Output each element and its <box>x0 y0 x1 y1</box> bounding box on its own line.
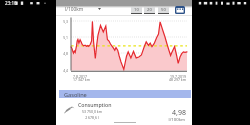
button[interactable] <box>62 7 104 15</box>
staticText: 4,4 <box>56 68 68 73</box>
staticText: 48 297 km <box>145 77 186 82</box>
button[interactable]: 50 <box>158 7 169 13</box>
staticText: 53 750,0 km <box>72 109 112 114</box>
button[interactable] <box>59 99 191 125</box>
staticText: 19.7.2019 <box>145 74 186 79</box>
button[interactable] <box>59 90 191 98</box>
staticText: l/100km <box>65 6 84 13</box>
staticText: 50 <box>161 7 166 13</box>
staticText: Consumption <box>78 101 112 108</box>
staticText: 23:16 <box>5 0 17 6</box>
button[interactable]: 20 <box>144 7 155 13</box>
staticText: 4,8 <box>56 51 68 56</box>
button[interactable]: Pick date range <box>175 6 185 14</box>
staticText: 5,3 <box>56 19 68 24</box>
staticText: 17 347 km <box>73 77 90 82</box>
staticText: 7.8.2017 <box>73 74 87 79</box>
staticText: 4,98 <box>145 108 186 118</box>
staticText: Gasoline <box>64 91 87 99</box>
staticText: 10 <box>134 7 139 13</box>
button[interactable]: 10 <box>131 7 142 13</box>
staticText: 20 <box>147 7 152 13</box>
staticText: 5,1 <box>56 35 68 40</box>
staticText: 2 678,6 l <box>72 115 112 120</box>
staticText: l/100km <box>145 116 185 122</box>
